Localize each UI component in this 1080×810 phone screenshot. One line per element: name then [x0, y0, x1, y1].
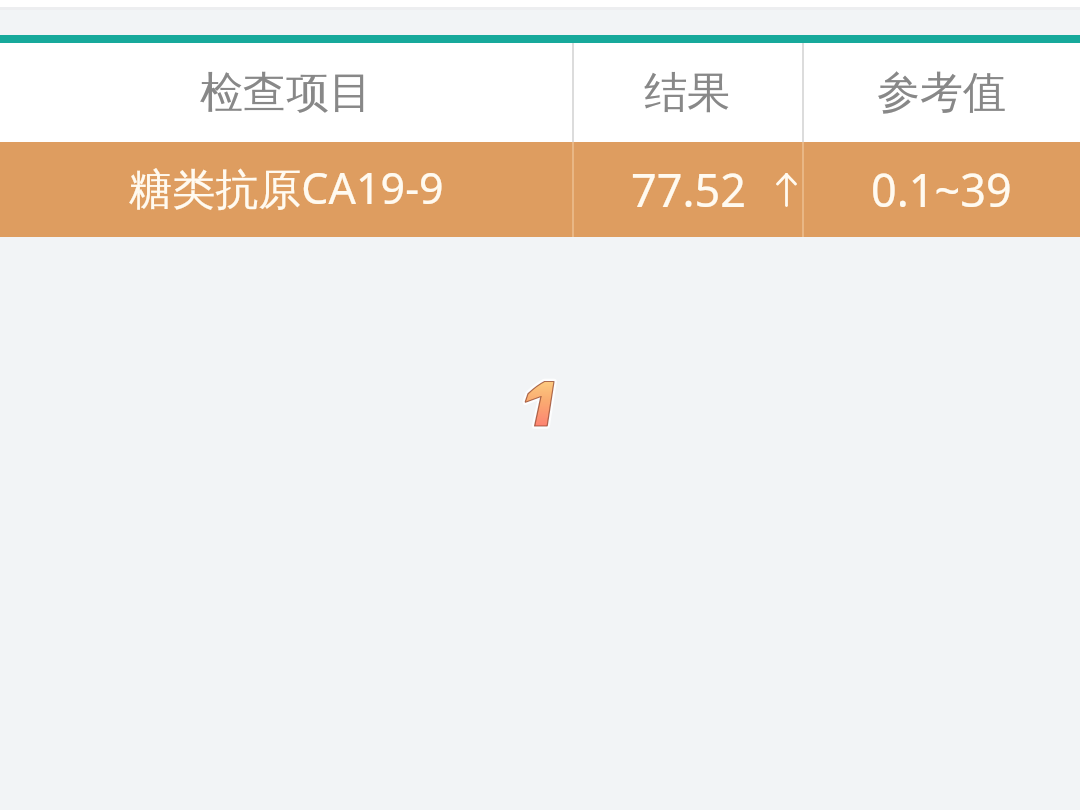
staticText: 糖类抗原CA19-9 — [129, 158, 444, 217]
other: Result above reference range — [776, 173, 797, 207]
staticText: 检查项目 — [200, 66, 372, 120]
button[interactable]: 检查项目 — [0, 43, 572, 142]
staticText: 结果 — [644, 66, 730, 120]
staticText: 参考值 — [877, 66, 1006, 120]
button[interactable]: 参考值 — [802, 43, 1080, 142]
button[interactable]: 结果 — [572, 43, 802, 142]
button[interactable]: 糖类抗原CA19-9 — [0, 142, 1080, 237]
staticText: 77.52 — [631, 159, 747, 220]
other: Page 1 — [523, 379, 557, 428]
staticText: 0.1~39 — [871, 159, 1012, 220]
